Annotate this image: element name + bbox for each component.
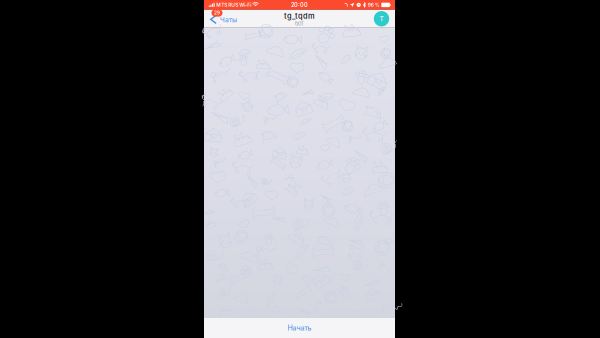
button[interactable]: Начать: [204, 318, 395, 338]
staticText: tg_tqdm: [284, 12, 315, 21]
staticText: 20:00: [291, 1, 308, 8]
staticText: Чаты: [220, 16, 237, 24]
staticText: MTS RUS Wi-Fi: [216, 2, 251, 8]
staticText: Начать: [287, 324, 311, 332]
staticText: T: [379, 15, 383, 23]
staticText: 96 %: [368, 2, 380, 8]
button[interactable]: Open profile: [373, 11, 389, 27]
button[interactable]: Чаты: [208, 10, 244, 28]
staticText: бот: [295, 20, 304, 27]
staticText: 29: [214, 10, 220, 16]
